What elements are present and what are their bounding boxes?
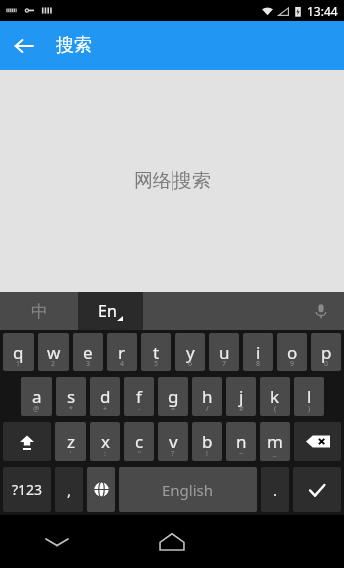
staticText: w <box>47 341 61 364</box>
staticText: 网络 <box>134 169 172 193</box>
staticText: 8 <box>256 359 261 369</box>
staticText: 6 <box>188 359 193 369</box>
staticText: + <box>103 404 108 414</box>
staticText: = <box>171 404 176 414</box>
button[interactable]: ?123 <box>3 467 51 512</box>
staticText: u <box>219 341 230 364</box>
button[interactable]: j <box>226 377 256 416</box>
button[interactable]: English <box>119 467 257 512</box>
button[interactable]: u <box>209 333 239 371</box>
staticText: @ <box>33 404 40 414</box>
staticText: p <box>321 341 332 364</box>
button[interactable]: Delete <box>294 422 341 461</box>
staticText: d <box>100 385 111 408</box>
staticText: b <box>202 430 213 453</box>
button[interactable]: , <box>55 467 83 512</box>
staticText: e <box>83 341 93 364</box>
button[interactable]: Voice input <box>298 292 344 330</box>
staticText: ) <box>308 404 311 414</box>
staticText: English <box>162 480 214 500</box>
staticText: ( <box>274 404 277 414</box>
button[interactable]: a <box>21 377 52 416</box>
staticText: , <box>67 480 72 500</box>
button[interactable]: z <box>55 422 86 461</box>
staticText: 1 <box>16 359 21 369</box>
staticText: 4 <box>120 359 125 369</box>
button[interactable]: . <box>261 467 289 512</box>
staticText: r <box>118 341 126 364</box>
staticText: # <box>239 404 244 414</box>
button[interactable]: c <box>124 422 154 461</box>
staticText: 5 <box>154 359 159 369</box>
staticText: : <box>104 449 106 459</box>
button[interactable]: g <box>158 377 188 416</box>
staticText: ? <box>171 449 175 459</box>
button[interactable]: e <box>73 333 103 371</box>
staticText: z <box>67 430 75 453</box>
staticText: s <box>67 385 76 408</box>
staticText: c <box>135 430 144 453</box>
staticText: _ <box>273 449 277 459</box>
button[interactable]: Hide keyboard <box>0 515 114 568</box>
staticText: / <box>206 404 209 414</box>
staticText: q <box>13 341 24 364</box>
button[interactable]: x <box>90 422 120 461</box>
button[interactable]: w <box>38 333 69 371</box>
staticText: o <box>287 341 298 364</box>
staticText: " <box>138 449 141 459</box>
staticText: 7 <box>222 359 227 369</box>
staticText: y <box>186 341 195 364</box>
button[interactable]: Home <box>114 515 229 568</box>
staticText: 搜索 <box>173 169 211 193</box>
staticText: x <box>101 430 110 453</box>
button[interactable]: Enter <box>293 467 341 512</box>
button[interactable]: Back <box>0 22 48 70</box>
button[interactable]: h <box>192 377 222 416</box>
button[interactable]: f <box>124 377 154 416</box>
staticText: 中 <box>31 301 48 322</box>
button[interactable]: n <box>226 422 256 461</box>
button[interactable]: i <box>243 333 273 371</box>
button[interactable]: q <box>3 333 34 371</box>
staticText: g <box>168 385 179 408</box>
button[interactable]: 中 <box>0 292 78 330</box>
staticText: j <box>239 385 244 408</box>
button[interactable]: v <box>158 422 188 461</box>
button[interactable]: Change language <box>87 467 115 512</box>
button[interactable]: d <box>90 377 120 416</box>
button[interactable]: Shift <box>3 422 51 461</box>
staticText: 2 <box>51 359 56 369</box>
button[interactable]: b <box>192 422 222 461</box>
button[interactable]: o <box>277 333 307 371</box>
staticText: ~ <box>239 449 244 459</box>
staticText: En <box>98 300 117 322</box>
staticText: t <box>153 341 160 364</box>
staticText: v <box>169 430 178 453</box>
button[interactable]: l <box>294 377 324 416</box>
staticText: n <box>236 430 247 453</box>
staticText: h <box>202 385 213 408</box>
button[interactable]: k <box>260 377 290 416</box>
staticText: f <box>136 385 142 408</box>
staticText: a <box>32 385 42 408</box>
staticText: 9 <box>290 359 295 369</box>
staticText: * <box>69 404 73 414</box>
staticText: l <box>307 385 312 408</box>
staticText: . <box>273 480 278 500</box>
button[interactable]: p <box>311 333 341 371</box>
staticText: ! <box>206 449 208 459</box>
staticText: ?123 <box>12 480 43 499</box>
staticText: k <box>270 385 280 408</box>
button[interactable]: s <box>56 377 86 416</box>
button[interactable]: r <box>107 333 137 371</box>
staticText: 13:44 <box>307 3 338 19</box>
button[interactable]: En <box>78 292 143 330</box>
button[interactable]: m <box>260 422 290 461</box>
staticText: - <box>138 404 141 414</box>
button[interactable]: y <box>175 333 205 371</box>
staticText: i <box>256 341 261 364</box>
button[interactable]: t <box>141 333 171 371</box>
staticText: ' <box>70 449 72 459</box>
staticText: 3 <box>86 359 91 369</box>
